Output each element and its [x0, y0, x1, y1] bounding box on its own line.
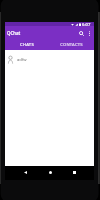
- button[interactable]: CONTACTS: [49, 40, 94, 50]
- staticText: CHATS: [20, 42, 34, 48]
- button[interactable]: Back: [21, 167, 29, 177]
- button[interactable]: Home: [46, 167, 54, 177]
- button[interactable]: Recents: [70, 167, 78, 177]
- staticText: adfw: [17, 57, 27, 63]
- staticText: QChat: [7, 30, 21, 36]
- staticText: 6:07: [82, 22, 91, 26]
- button[interactable]: adfw: [5, 50, 94, 70]
- button[interactable]: Search: [77, 27, 85, 39]
- staticText: CONTACTS: [60, 42, 83, 48]
- button[interactable]: CHATS: [5, 40, 49, 50]
- button[interactable]: More options: [85, 27, 93, 39]
